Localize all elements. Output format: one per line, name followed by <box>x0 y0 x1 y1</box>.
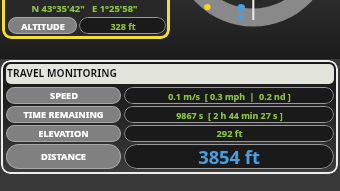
staticText: 0.1 m/s [ 0.3 mph | 0.2 nd ] <box>168 90 291 102</box>
staticText: SPEED <box>50 89 78 102</box>
button[interactable]: TRAVEL MONITORING <box>6 64 334 84</box>
button[interactable]: 328 ft <box>79 17 166 34</box>
staticText: ALTITUDE <box>21 20 65 32</box>
staticText: ELEVATION <box>38 127 89 140</box>
button[interactable]: ELEVATION <box>6 125 121 142</box>
button[interactable]: 292 ft <box>124 125 334 142</box>
staticText: TRAVEL MONITORING <box>7 66 117 80</box>
button[interactable]: TIME REMAINING <box>6 106 121 123</box>
staticText: N 43°35'42" E 1°25'58" <box>31 2 138 15</box>
button[interactable]: 3854 ft <box>124 144 334 169</box>
staticText: 9867 s [ 2 h 44 min 27 s ] <box>176 109 283 121</box>
staticText: 3854 ft <box>198 144 260 169</box>
button[interactable]: ALTITUDE <box>8 17 77 34</box>
button[interactable]: 9867 s [ 2 h 44 min 27 s ] <box>124 106 334 123</box>
staticText: 328 ft <box>110 20 136 32</box>
button[interactable]: DISTANCE <box>6 144 121 169</box>
staticText: TIME REMAINING <box>23 108 104 121</box>
button[interactable]: SPEED <box>6 87 121 104</box>
staticText: 292 ft <box>216 127 243 140</box>
staticText: DISTANCE <box>41 150 86 163</box>
button[interactable]: 0.1 m/s [ 0.3 mph | 0.2 nd ] <box>124 87 334 104</box>
